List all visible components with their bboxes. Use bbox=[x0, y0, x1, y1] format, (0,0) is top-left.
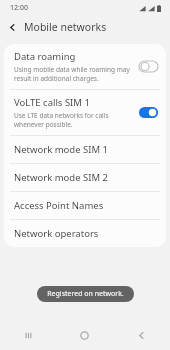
staticText: Network mode SIM 2 bbox=[14, 171, 108, 184]
button[interactable]: Home bbox=[56, 320, 113, 350]
button[interactable]: Network mode SIM 2 bbox=[4, 164, 166, 191]
button[interactable]: Back bbox=[113, 320, 170, 350]
button[interactable]: Network operators bbox=[4, 220, 166, 247]
staticText: VoLTE calls SIM 1 bbox=[14, 96, 90, 109]
staticText: Using mobile data while roaming may resu… bbox=[14, 65, 134, 83]
staticText: 12:00 bbox=[10, 3, 28, 13]
staticText: Network mode SIM 1 bbox=[14, 143, 108, 156]
staticText: Access Point Names bbox=[14, 199, 104, 212]
staticText: Use LTE data networks for calls whenever… bbox=[14, 111, 134, 129]
staticText: Network operators bbox=[14, 227, 99, 240]
staticText: Mobile networks bbox=[24, 20, 107, 34]
button[interactable]: Back bbox=[0, 16, 24, 38]
button[interactable]: VoLTE calls SIM 1 bbox=[4, 90, 166, 135]
staticText: Data roaming bbox=[14, 50, 76, 63]
button[interactable]: Off bbox=[139, 61, 158, 72]
button[interactable]: Network mode SIM 1 bbox=[4, 136, 166, 163]
button[interactable]: On bbox=[139, 107, 158, 118]
staticText: Registered on network. bbox=[47, 289, 124, 299]
button[interactable]: Data roaming bbox=[4, 44, 166, 89]
button[interactable]: Recents bbox=[0, 320, 56, 350]
button[interactable]: Access Point Names bbox=[4, 192, 166, 219]
